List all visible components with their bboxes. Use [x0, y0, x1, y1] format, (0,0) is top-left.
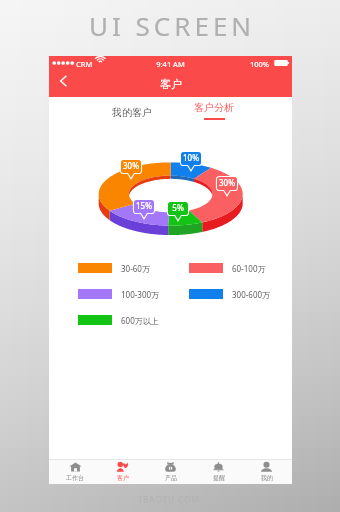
button[interactable]: 300-600万	[189, 289, 271, 299]
staticText: 15%	[131, 200, 157, 211]
staticText: 30-60万	[121, 263, 150, 273]
button[interactable]: 客户分析	[184, 101, 244, 129]
button[interactable]: 100-300万	[78, 289, 160, 299]
staticText: 客户分析	[194, 101, 234, 114]
staticText: CRM	[76, 59, 93, 69]
button[interactable]: 客户	[100, 460, 145, 484]
staticText: 100-300万	[121, 289, 160, 299]
staticText: UI SCREEN	[89, 8, 256, 43]
button[interactable]: 提醒	[196, 460, 241, 484]
staticText: 300-600万	[232, 289, 271, 299]
staticText: 5%	[165, 202, 191, 213]
staticText: 客户	[160, 77, 182, 91]
button[interactable]: 我的客户	[102, 101, 162, 123]
staticText: 100%	[250, 59, 270, 69]
staticText: 产品	[165, 474, 177, 482]
staticText: 30%	[118, 160, 144, 171]
staticText: 客户	[117, 474, 129, 482]
staticText: 工作台	[66, 474, 84, 482]
staticText: 10%	[178, 152, 204, 163]
button[interactable]: 60-100万	[189, 263, 266, 273]
staticText: 提醒	[213, 474, 225, 482]
button[interactable]: 产品	[148, 460, 193, 484]
button[interactable]: Back	[52, 70, 74, 92]
staticText: 9:41 AM	[49, 59, 292, 69]
button[interactable]: 工作台	[52, 460, 97, 484]
button[interactable]: 30-60万	[78, 263, 150, 273]
staticText: 我的	[261, 474, 273, 482]
staticText: 我的客户	[112, 106, 152, 119]
staticText: 30%	[214, 177, 240, 188]
staticText: 60-100万	[232, 263, 266, 273]
staticText: 600万以上	[121, 315, 159, 325]
button[interactable]: 我的	[244, 460, 289, 484]
button[interactable]: 600万以上	[78, 315, 159, 325]
